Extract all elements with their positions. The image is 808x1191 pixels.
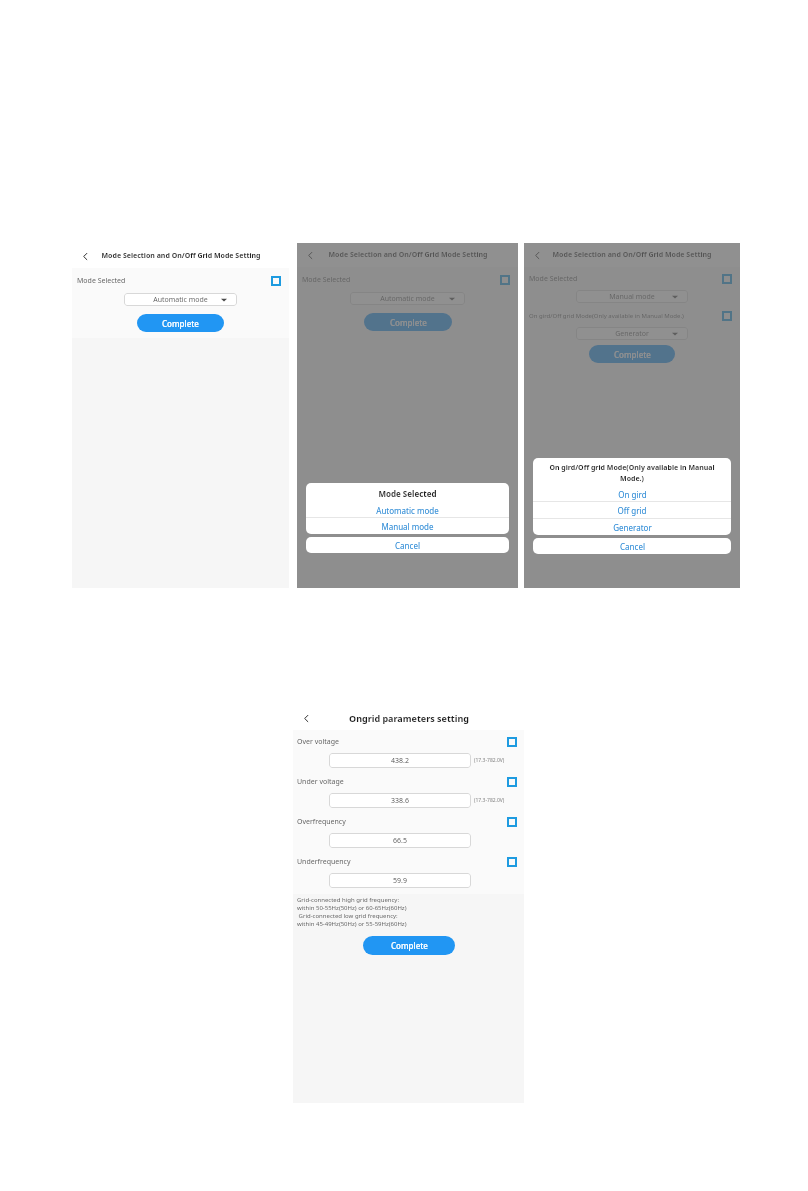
button[interactable]: Manual mode: [576, 290, 688, 303]
staticText: Mode Selected: [302, 275, 351, 285]
button[interactable]: Complete: [137, 314, 224, 332]
button[interactable]: On gird: [533, 488, 731, 501]
button[interactable]: Back: [301, 246, 320, 265]
staticText: Overfrequency: [297, 817, 346, 827]
staticText: 438.2: [391, 756, 409, 766]
staticText: Mode Selection and On/Off Grid Mode Sett…: [552, 250, 712, 260]
staticText: Mode Selected: [77, 276, 126, 286]
button[interactable]: 338.6: [329, 793, 471, 808]
button[interactable]: Toggle: [504, 814, 520, 830]
staticText: 66.5: [393, 836, 407, 846]
staticText: Generator: [613, 522, 652, 533]
staticText: Cancel: [395, 540, 420, 551]
button[interactable]: Complete: [364, 313, 452, 331]
staticText: Mode Selected: [378, 488, 437, 499]
staticText: Complete: [614, 349, 651, 360]
staticText: Underfrequency: [297, 857, 351, 867]
button[interactable]: Generator: [533, 519, 731, 535]
button[interactable]: Back: [76, 247, 95, 266]
staticText: 338.6: [391, 796, 409, 806]
staticText: Generator: [615, 329, 649, 339]
button[interactable]: Toggle: [497, 272, 513, 288]
button[interactable]: Toggle: [268, 273, 284, 289]
staticText: On gird/Off grid Mode(Only available in …: [541, 463, 723, 483]
staticText: Over voltage: [297, 737, 339, 747]
button[interactable]: Toggle: [504, 854, 520, 870]
button[interactable]: Cancel: [306, 537, 509, 553]
staticText: Under voltage: [297, 777, 344, 787]
button[interactable]: Automatic mode: [306, 504, 509, 517]
button[interactable]: Back: [297, 709, 316, 728]
button[interactable]: Cancel: [533, 538, 731, 554]
staticText: Off grid: [617, 505, 647, 516]
staticText: Mode Selection and On/Off Grid Mode Sett…: [328, 250, 488, 260]
staticText: (17.3-782.0V): [474, 757, 505, 764]
staticText: Mode Selection and On/Off Grid Mode Sett…: [101, 251, 261, 261]
staticText: Complete: [390, 317, 427, 328]
button[interactable]: Complete: [363, 936, 455, 955]
button[interactable]: Toggle: [504, 774, 520, 790]
staticText: Automatic mode: [380, 294, 435, 304]
staticText: 59.9: [393, 876, 407, 886]
button[interactable]: Complete: [589, 345, 675, 363]
staticText: Manual mode: [381, 521, 434, 532]
button[interactable]: Off grid: [533, 502, 731, 518]
staticText: Manual mode: [609, 292, 655, 302]
button[interactable]: Toggle: [504, 734, 520, 750]
button[interactable]: 66.5: [329, 833, 471, 848]
button[interactable]: 438.2: [329, 753, 471, 768]
staticText: Grid-connected high grid frequency: with…: [297, 896, 407, 928]
staticText: Mode Selected: [529, 274, 578, 284]
button[interactable]: Manual mode: [306, 518, 509, 534]
staticText: Cancel: [620, 541, 645, 552]
button[interactable]: Toggle: [719, 271, 735, 287]
button[interactable]: Automatic mode: [350, 292, 465, 305]
button[interactable]: Toggle: [719, 308, 735, 324]
button[interactable]: 59.9: [329, 873, 471, 888]
staticText: Ongrid parameters setting: [349, 712, 469, 724]
staticText: Complete: [162, 318, 199, 329]
staticText: Complete: [391, 940, 428, 951]
button[interactable]: Generator: [576, 327, 688, 340]
button[interactable]: Automatic mode: [124, 293, 237, 306]
staticText: On gird: [618, 489, 647, 500]
staticText: Automatic mode: [376, 505, 439, 516]
button[interactable]: Back: [528, 246, 547, 265]
staticText: On gird/Off grid Mode(Only available in …: [529, 312, 684, 320]
staticText: Automatic mode: [153, 295, 208, 305]
staticText: (17.3-782.0V): [474, 797, 505, 804]
